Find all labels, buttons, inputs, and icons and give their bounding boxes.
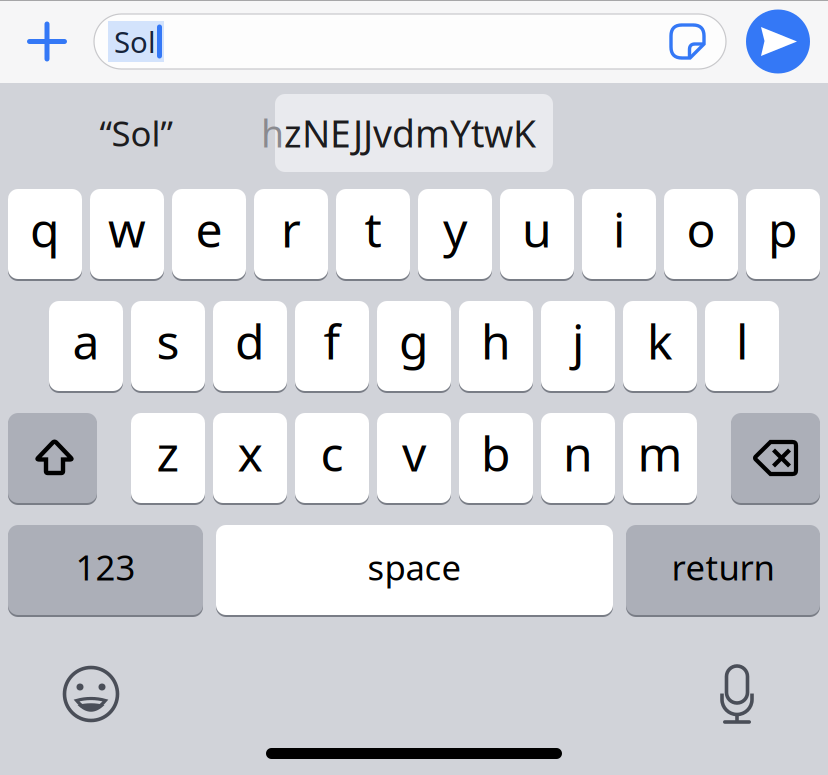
button[interactable]: q bbox=[8, 189, 82, 279]
button[interactable]: p bbox=[746, 189, 820, 279]
staticText: h bbox=[261, 108, 284, 158]
staticText: y bbox=[443, 197, 467, 261]
staticText: f bbox=[323, 309, 340, 373]
button[interactable]: Dictate bbox=[701, 658, 773, 730]
button[interactable]: Emoji bbox=[55, 658, 127, 730]
staticText: d bbox=[235, 309, 265, 373]
staticText: s bbox=[156, 309, 179, 373]
staticText: “Sol” bbox=[99, 110, 172, 156]
staticText: Sol bbox=[114, 22, 156, 61]
button[interactable]: 123 bbox=[8, 525, 203, 615]
staticText: o bbox=[686, 197, 715, 261]
button[interactable]: Shift bbox=[8, 413, 97, 503]
staticText: l bbox=[736, 309, 748, 373]
button[interactable]: t bbox=[336, 189, 410, 279]
button[interactable]: c bbox=[295, 413, 369, 503]
button[interactable]: f bbox=[295, 301, 369, 391]
button[interactable]: d bbox=[213, 301, 287, 391]
button[interactable]: return bbox=[626, 525, 820, 615]
staticText: 123 bbox=[75, 544, 135, 590]
button[interactable]: k bbox=[623, 301, 697, 391]
button[interactable]: g bbox=[377, 301, 451, 391]
button[interactable]: space bbox=[216, 525, 613, 615]
button[interactable]: r bbox=[254, 189, 328, 279]
staticText: n bbox=[563, 421, 593, 485]
staticText: v bbox=[402, 421, 426, 485]
button[interactable]: w bbox=[90, 189, 164, 279]
staticText: c bbox=[320, 421, 343, 485]
button[interactable]: b bbox=[459, 413, 533, 503]
staticText: k bbox=[647, 309, 673, 373]
button[interactable]: v bbox=[377, 413, 451, 503]
button[interactable]: s bbox=[131, 301, 205, 391]
button[interactable]: i bbox=[582, 189, 656, 279]
button[interactable]: h bbox=[459, 301, 533, 391]
button[interactable]: y bbox=[418, 189, 492, 279]
staticText: j bbox=[572, 309, 584, 373]
button[interactable]: x bbox=[213, 413, 287, 503]
button[interactable]: Add attachment bbox=[17, 11, 77, 71]
button[interactable]: n bbox=[541, 413, 615, 503]
staticText: x bbox=[237, 421, 262, 485]
staticText: e bbox=[195, 197, 222, 261]
button[interactable]: u bbox=[500, 189, 574, 279]
button[interactable]: j bbox=[541, 301, 615, 391]
staticText: i bbox=[613, 197, 625, 261]
button[interactable]: e bbox=[172, 189, 246, 279]
staticText: r bbox=[281, 197, 301, 261]
staticText: space bbox=[367, 544, 461, 590]
button[interactable]: Delete bbox=[731, 413, 820, 503]
button[interactable]: z bbox=[131, 413, 205, 503]
staticText: m bbox=[637, 421, 682, 485]
staticText: t bbox=[364, 197, 381, 261]
button[interactable]: o bbox=[664, 189, 738, 279]
button[interactable]: Send bbox=[746, 9, 810, 73]
button[interactable]: h bbox=[275, 94, 553, 172]
staticText: b bbox=[481, 421, 511, 485]
button[interactable]: a bbox=[49, 301, 123, 391]
staticText: a bbox=[72, 309, 99, 373]
button[interactable]: m bbox=[623, 413, 697, 503]
staticText: u bbox=[522, 197, 552, 261]
button[interactable]: l bbox=[705, 301, 779, 391]
staticText: g bbox=[399, 309, 429, 373]
staticText: zNEJJvdmYtwK bbox=[284, 108, 536, 158]
staticText: h bbox=[481, 309, 511, 373]
button[interactable]: “Sol” bbox=[62, 94, 210, 172]
staticText: z bbox=[156, 421, 179, 485]
staticText: w bbox=[108, 197, 146, 261]
staticText: return bbox=[671, 544, 774, 590]
staticText: p bbox=[768, 197, 798, 261]
staticText: q bbox=[30, 197, 60, 261]
